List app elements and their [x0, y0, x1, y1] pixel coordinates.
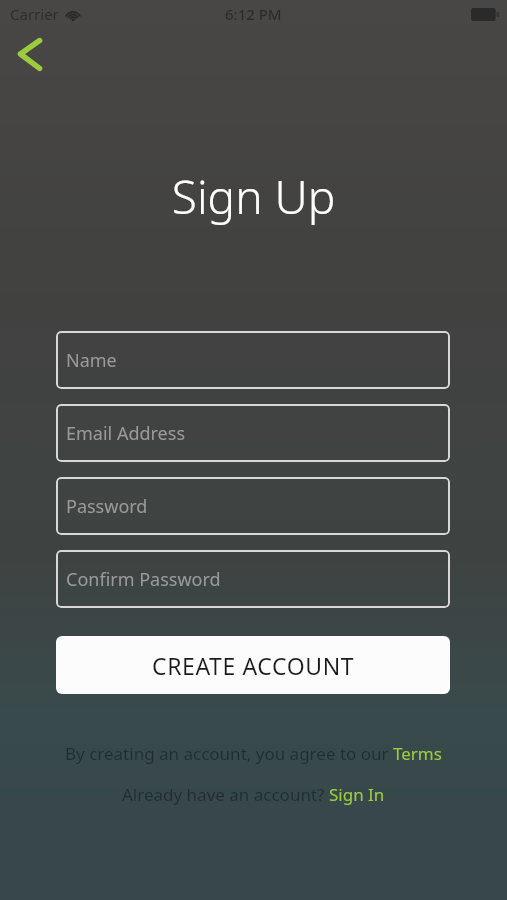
- staticText: Name: [66, 348, 117, 373]
- staticText: Sign Up: [0, 165, 507, 228]
- button[interactable]: Sign In: [329, 783, 385, 806]
- staticText: 6:12 PM: [225, 4, 282, 24]
- staticText: Email Address: [66, 421, 186, 446]
- button[interactable]: Password: [56, 477, 450, 535]
- button[interactable]: Terms: [393, 742, 442, 765]
- staticText: Terms: [393, 742, 442, 765]
- staticText: Confirm Password: [66, 567, 221, 592]
- staticText: Sign In: [329, 783, 385, 806]
- button[interactable]: Email Address: [56, 404, 450, 462]
- staticText: Already have an account?: [122, 783, 329, 806]
- staticText: Password: [66, 494, 148, 519]
- staticText: Carrier: [10, 4, 59, 24]
- staticText: CREATE ACCOUNT: [152, 650, 355, 681]
- button[interactable]: Confirm Password: [56, 550, 450, 608]
- button[interactable]: Name: [56, 331, 450, 389]
- button[interactable]: Back: [6, 30, 54, 78]
- button[interactable]: CREATE ACCOUNT: [56, 636, 450, 694]
- staticText: By creating an account, you agree to our: [65, 742, 393, 765]
